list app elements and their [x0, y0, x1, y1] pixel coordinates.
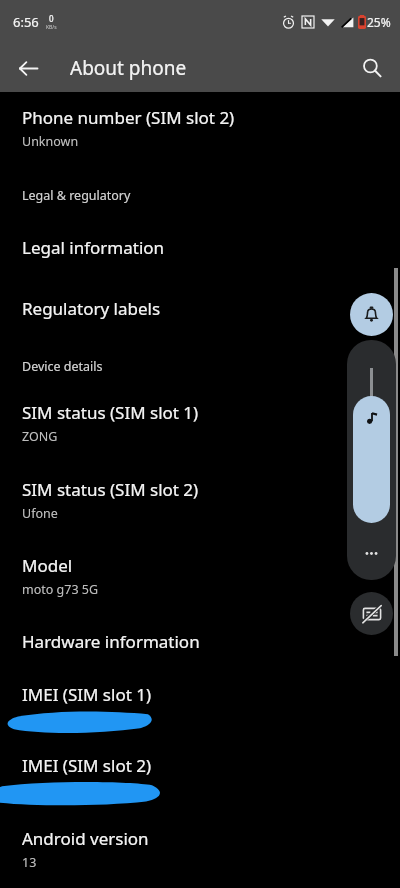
button[interactable]: Legal information [0, 236, 400, 259]
staticText: moto g73 5G [22, 581, 99, 598]
staticText: Hardware information [22, 630, 200, 653]
button[interactable]: Search [354, 50, 390, 86]
staticText: 25% [367, 14, 391, 30]
staticText: Regulatory labels [22, 297, 161, 320]
staticText: Legal & regulatory [22, 187, 131, 204]
staticText: SIM status (SIM slot 1) [22, 401, 199, 424]
button[interactable]: IMEI (SIM slot 2) [0, 754, 400, 807]
staticText: 13 [22, 854, 37, 871]
button[interactable]: Regulatory labels [0, 297, 400, 320]
button[interactable]: SIM status (SIM slot 1) [0, 401, 400, 445]
staticText: Unknown [22, 133, 79, 150]
staticText: Android version [22, 827, 149, 850]
staticText: About phone [70, 55, 187, 81]
button[interactable]: Android version [0, 827, 400, 871]
button[interactable]: Phone number (SIM slot 2) [0, 106, 400, 150]
staticText: Legal information [22, 236, 165, 259]
button[interactable]: Hardware information [0, 630, 400, 653]
staticText: KB/s [46, 24, 57, 31]
button[interactable]: IMEI (SIM slot 1) [0, 683, 400, 736]
staticText: IMEI (SIM slot 2) [22, 754, 152, 777]
staticText: 6:56 [13, 13, 39, 31]
button[interactable]: Captions off [350, 592, 393, 635]
staticText: 0 [49, 13, 54, 24]
staticText: Model [22, 554, 73, 577]
button[interactable]: SIM status (SIM slot 2) [0, 478, 400, 522]
button[interactable]: Model [0, 554, 400, 598]
staticText: IMEI (SIM slot 1) [22, 683, 152, 706]
staticText: Device details [22, 358, 103, 375]
button[interactable]: Ringer mode [350, 293, 393, 336]
staticText: ZONG [22, 428, 58, 445]
button[interactable]: More volume options [356, 538, 387, 569]
staticText: SIM status (SIM slot 2) [22, 478, 199, 501]
staticText: Phone number (SIM slot 2) [22, 106, 235, 129]
button[interactable]: Back [10, 50, 46, 86]
button[interactable]: Media volume [353, 396, 390, 523]
staticText: Ufone [22, 505, 58, 522]
